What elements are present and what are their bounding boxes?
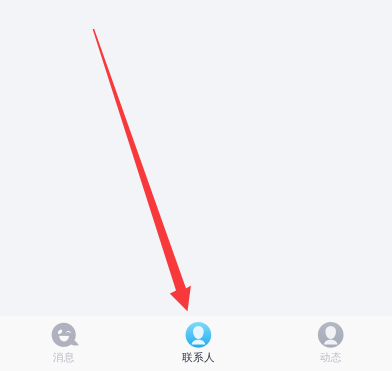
button[interactable]: 消息 [14,322,114,364]
button[interactable]: 联系人 [148,322,248,364]
staticText: 动态 [320,351,342,364]
staticText: 消息 [53,351,75,364]
button[interactable]: 动态 [281,322,381,364]
staticText: 联系人 [182,351,215,364]
